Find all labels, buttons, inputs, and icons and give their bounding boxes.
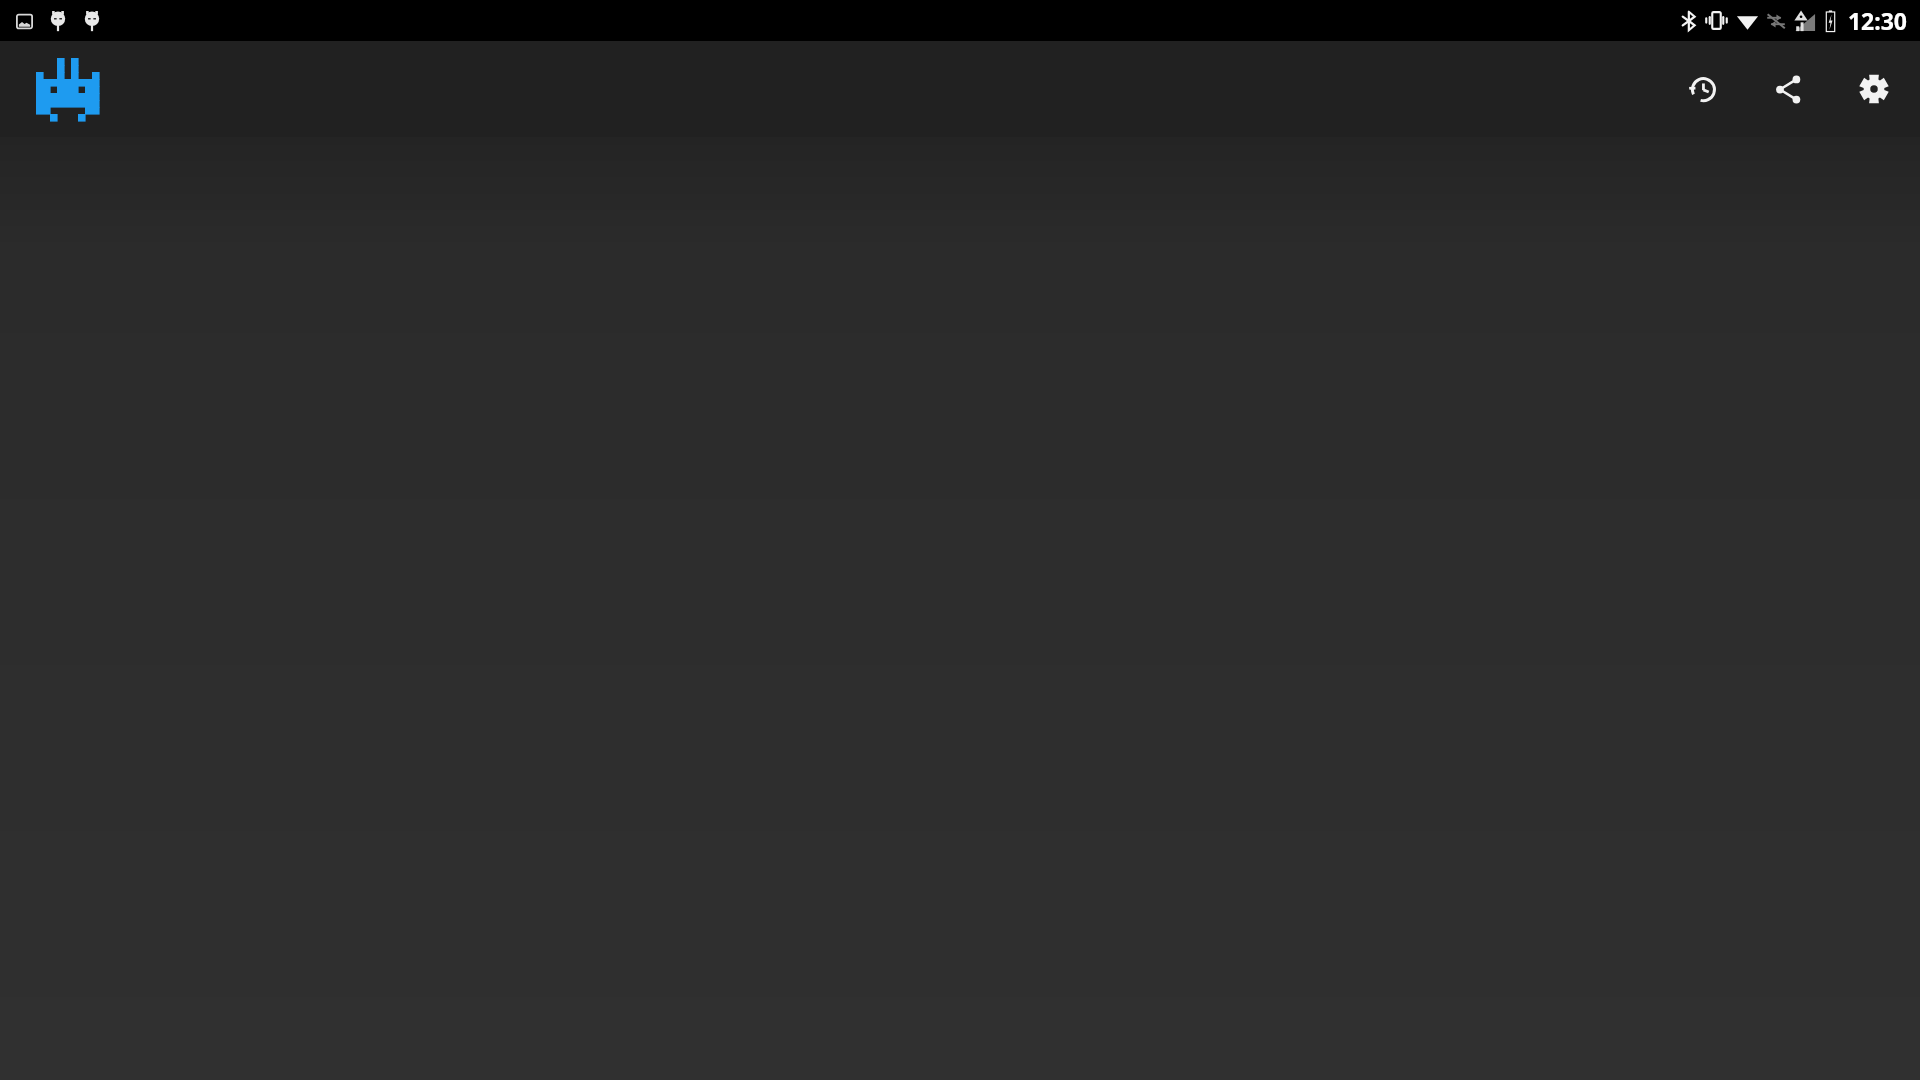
staticText: 12:30	[1847, 5, 1907, 36]
button[interactable]: Share	[1764, 65, 1812, 113]
button[interactable]: History	[1678, 65, 1726, 113]
button[interactable]: Settings	[1850, 65, 1898, 113]
button[interactable]: App logo	[27, 54, 107, 124]
